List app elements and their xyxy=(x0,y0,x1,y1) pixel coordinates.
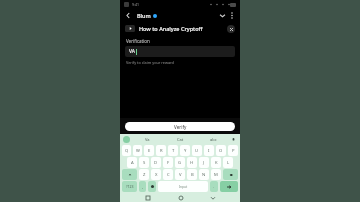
staticText: J xyxy=(203,160,205,166)
button[interactable]: Home xyxy=(176,193,185,202)
button[interactable]: L xyxy=(223,157,233,168)
staticText: A xyxy=(131,160,134,166)
button[interactable]: Y xyxy=(180,145,190,156)
button[interactable]: S xyxy=(139,157,149,168)
button[interactable]: Close xyxy=(227,25,235,33)
button[interactable]: F xyxy=(163,157,173,168)
button[interactable]: T xyxy=(168,145,178,156)
button[interactable]: P xyxy=(228,145,238,156)
staticText: Q xyxy=(125,148,129,154)
button[interactable]: More options xyxy=(227,11,236,20)
staticText: K xyxy=(215,160,218,166)
staticText: Z xyxy=(143,172,146,178)
button[interactable]: C xyxy=(163,169,173,180)
button[interactable]: Enter xyxy=(220,181,238,192)
staticText: D xyxy=(154,160,158,166)
button[interactable]: K xyxy=(211,157,221,168)
button[interactable]: Z xyxy=(139,169,149,180)
button[interactable]: Back xyxy=(208,193,217,202)
button[interactable]: I xyxy=(204,145,214,156)
button[interactable]: VA xyxy=(125,46,235,57)
staticText: abc xyxy=(210,137,217,142)
button[interactable]: Shift xyxy=(122,169,137,180)
staticText: F xyxy=(167,160,170,166)
button[interactable]: Va xyxy=(130,137,164,142)
button[interactable]: D xyxy=(151,157,161,168)
staticText: 9:41 xyxy=(132,2,139,7)
button[interactable]: X xyxy=(151,169,161,180)
staticText: Input xyxy=(179,185,188,189)
button[interactable]: abc xyxy=(197,137,230,142)
staticText: V xyxy=(179,172,182,178)
staticText: X xyxy=(155,172,158,178)
button[interactable]: O xyxy=(216,145,226,156)
button[interactable]: W xyxy=(133,145,142,156)
staticText: Verify to claim your reward xyxy=(126,60,174,65)
staticText: Blum xyxy=(137,12,151,19)
staticText: H xyxy=(190,160,194,166)
button[interactable]: Backspace xyxy=(223,169,238,180)
staticText: N xyxy=(202,172,206,178)
button[interactable]: A xyxy=(127,157,137,168)
staticText: E xyxy=(148,148,151,154)
button[interactable]: Comma xyxy=(139,181,146,192)
staticText: R xyxy=(160,148,163,154)
staticText: Verify xyxy=(174,124,187,130)
staticText: T xyxy=(172,148,175,154)
button[interactable]: Q xyxy=(122,145,131,156)
button[interactable]: Space xyxy=(158,181,208,192)
button[interactable]: Cat xyxy=(164,137,197,142)
staticText: O xyxy=(219,148,223,154)
button[interactable]: R xyxy=(156,145,166,156)
button[interactable]: Emoji xyxy=(148,181,156,192)
staticText: W xyxy=(136,148,140,154)
staticText: U xyxy=(195,148,199,154)
staticText: , xyxy=(142,184,144,189)
button[interactable]: N xyxy=(199,169,209,180)
staticText: B xyxy=(191,172,194,178)
staticText: VA xyxy=(129,48,135,55)
staticText: C xyxy=(167,172,170,178)
button[interactable]: V xyxy=(175,169,185,180)
button[interactable]: H xyxy=(187,157,197,168)
button[interactable]: Voice input xyxy=(230,136,237,143)
button[interactable]: E xyxy=(144,145,154,156)
button[interactable]: U xyxy=(192,145,202,156)
button[interactable]: Back xyxy=(124,11,133,20)
staticText: G xyxy=(178,160,182,166)
staticText: Y xyxy=(184,148,187,154)
button[interactable]: G xyxy=(175,157,185,168)
button[interactable]: Expand xyxy=(218,11,227,20)
staticText: L xyxy=(227,160,230,166)
button[interactable]: B xyxy=(187,169,197,180)
staticText: I xyxy=(208,148,210,154)
staticText: . xyxy=(213,184,215,189)
staticText: Cat xyxy=(177,137,184,142)
staticText: How to Analyze Cryptoff xyxy=(139,25,203,32)
staticText: Va xyxy=(145,137,150,142)
staticText: P xyxy=(232,148,235,154)
staticText: S xyxy=(143,160,146,166)
button[interactable]: J xyxy=(199,157,209,168)
staticText: ?123 xyxy=(126,184,134,189)
button[interactable]: Recents xyxy=(143,193,152,202)
button[interactable]: Keyboard settings xyxy=(123,136,130,143)
button[interactable]: Period xyxy=(210,181,218,192)
button[interactable]: M xyxy=(211,169,221,180)
button[interactable]: How to Analyze Cryptoff xyxy=(125,22,235,35)
staticText: M xyxy=(214,172,218,178)
staticText: Verification xyxy=(126,38,150,44)
button[interactable]: Verify xyxy=(125,122,235,131)
button[interactable]: ?123 xyxy=(122,181,137,192)
